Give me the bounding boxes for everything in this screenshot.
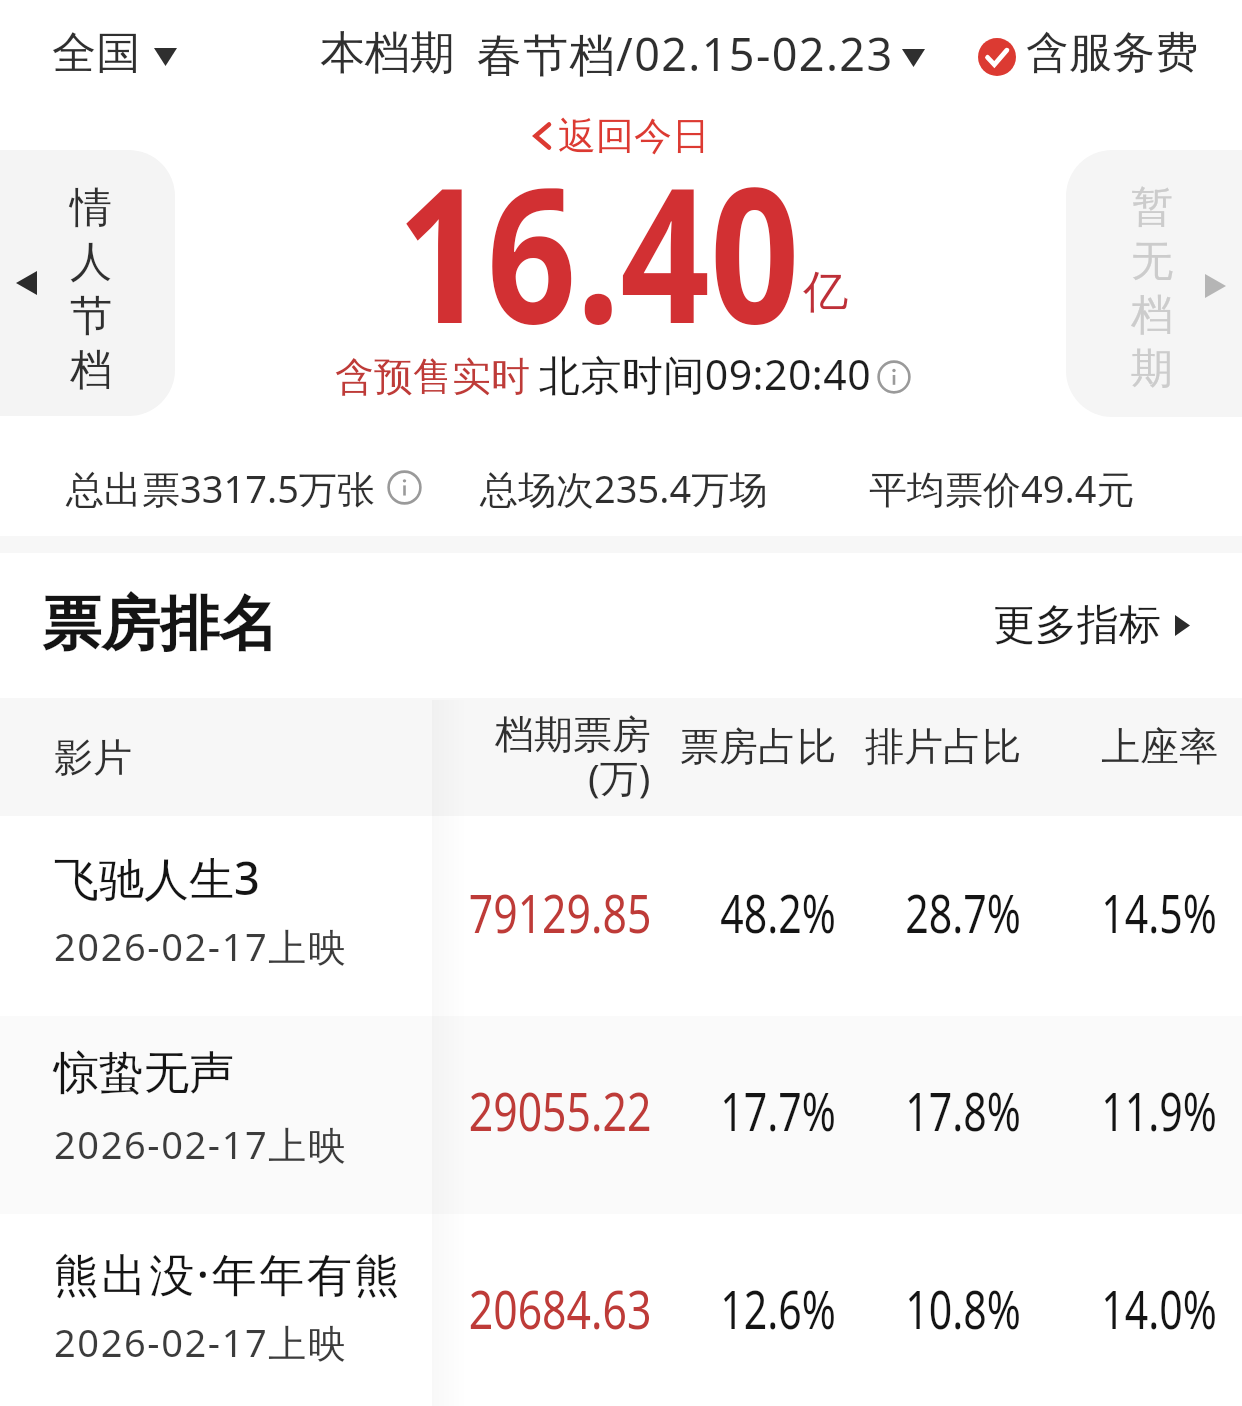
staticText: 飞驰人生3 [54, 847, 260, 908]
button[interactable]: 含服务费 [978, 26, 1198, 80]
staticText: 排片占比 [865, 722, 1021, 771]
button[interactable]: 熊出没·年年有熊 [0, 1214, 1242, 1406]
staticText: 人 [70, 236, 112, 289]
staticText: 14.5% [1101, 877, 1217, 948]
staticText: 10.8% [905, 1273, 1021, 1344]
button[interactable] [0, 150, 175, 416]
staticText: 无 [1131, 235, 1173, 288]
button[interactable]: 惊蛰无声 [0, 1016, 1242, 1214]
staticText: 上座率 [1101, 722, 1218, 771]
staticText: 档 [70, 344, 112, 397]
staticText: 含服务费 [1026, 26, 1198, 80]
staticText: 2026-02-17上映 [54, 1118, 348, 1170]
staticText: 惊蛰无声 [54, 1045, 234, 1102]
button[interactable]: 飞驰人生3 [0, 818, 1242, 1016]
button[interactable]: 返回今日 [534, 112, 710, 160]
staticText: 16.40 [397, 123, 800, 378]
other: Next period [1205, 274, 1226, 298]
button[interactable]: 更多指标 [993, 599, 1190, 652]
staticText: 影片 [54, 733, 132, 782]
other: Info [387, 470, 422, 505]
staticText: 票房排名 [42, 587, 278, 661]
staticText: 79129.85 [469, 877, 652, 948]
staticText: 亿 [803, 264, 848, 321]
staticText: 平均票价49.4元 [869, 462, 1135, 514]
staticText: 全国 [52, 26, 140, 81]
staticText: 档 [1131, 289, 1173, 342]
button[interactable]: 总出票3317.5万张 [66, 460, 422, 515]
staticText: 档期票房 [495, 710, 651, 759]
staticText: 14.0% [1101, 1273, 1217, 1344]
other: Previous period [16, 271, 37, 295]
staticText: 29055.22 [469, 1075, 652, 1146]
staticText: 熊出没·年年有熊 [54, 1243, 403, 1304]
staticText: 暂 [1131, 181, 1173, 234]
staticText: 票房占比 [680, 722, 836, 771]
staticText: 28.7% [905, 877, 1021, 948]
staticText: 17.8% [905, 1075, 1021, 1146]
staticText: 48.2% [720, 877, 836, 948]
staticText: 2026-02-17上映 [54, 1316, 348, 1368]
staticText: 北京时间09:20:40 [539, 346, 872, 402]
staticText: 总场次235.4万场 [480, 462, 768, 514]
staticText: 总出票3317.5万张 [66, 462, 375, 514]
staticText: 17.7% [720, 1075, 836, 1146]
staticText: 本档期 [320, 25, 455, 82]
staticText: 2026-02-17上映 [54, 920, 348, 972]
button[interactable]: 本档期 [320, 23, 925, 84]
staticText: 更多指标 [993, 599, 1161, 652]
staticText: 春节档/02.15-02.23 [477, 23, 894, 84]
staticText: 含预售实时 [335, 352, 530, 401]
staticText: 期 [1131, 343, 1173, 396]
staticText: 返回今日 [558, 112, 710, 160]
staticText: (万) [588, 750, 651, 803]
button[interactable] [1066, 150, 1242, 417]
staticText: 20684.63 [469, 1273, 652, 1344]
staticText: 情 [70, 182, 112, 235]
other: Info [877, 360, 911, 394]
staticText: 11.9% [1101, 1075, 1217, 1146]
staticText: 12.6% [720, 1273, 836, 1344]
staticText: 节 [70, 290, 112, 343]
button[interactable]: 全国 [52, 26, 177, 81]
